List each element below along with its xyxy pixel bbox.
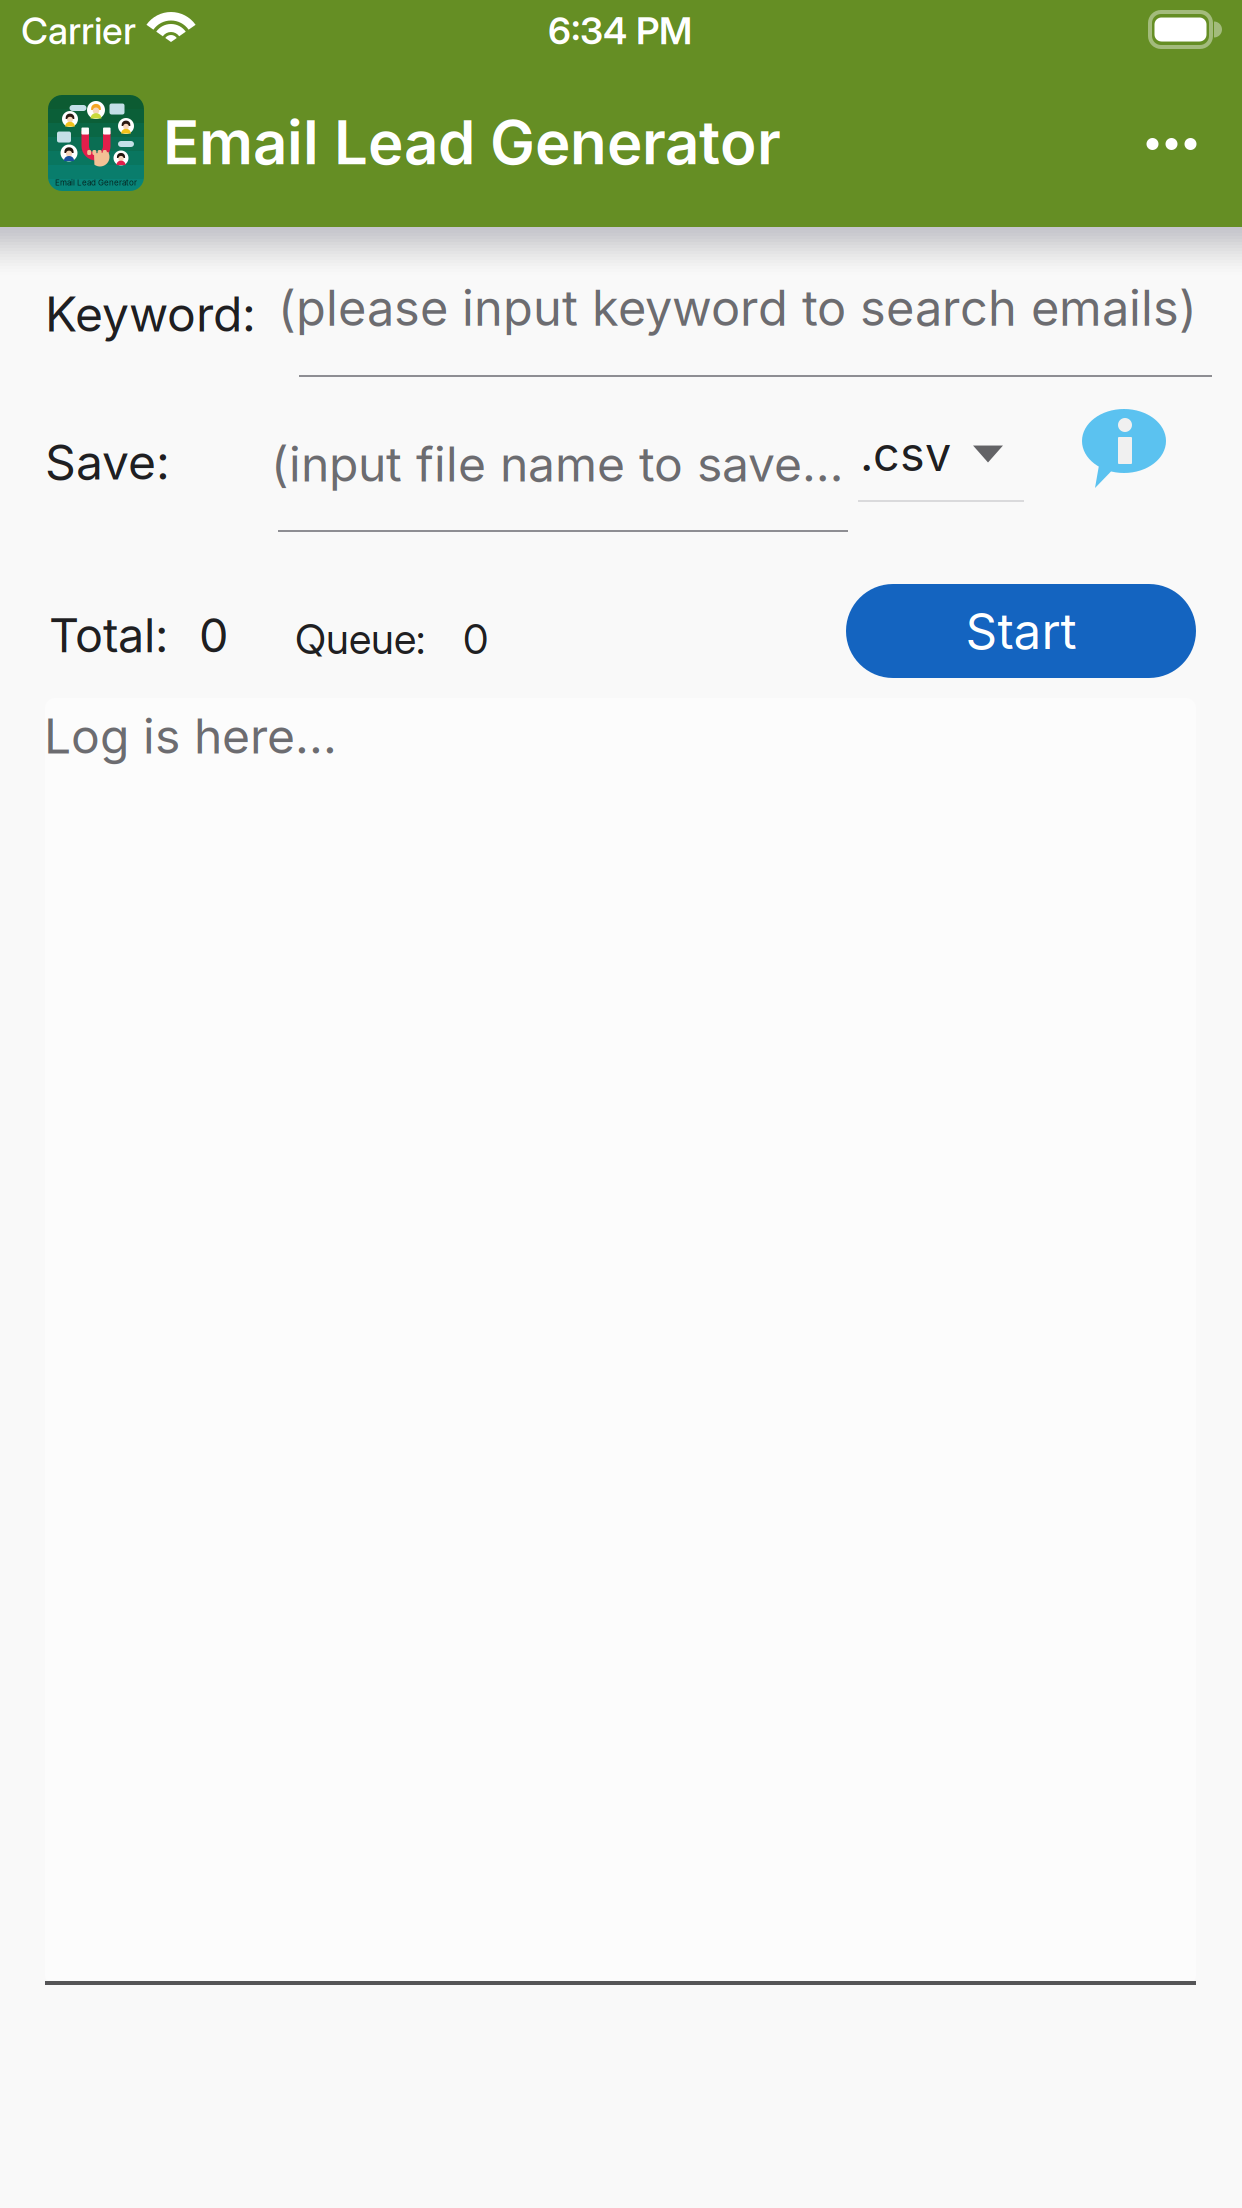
staticText: Keyword: [45,285,256,343]
staticText: Queue: [295,614,425,664]
staticText: Total: [49,607,168,663]
staticText: Email Lead Generator [163,106,781,179]
button[interactable]: (input file name to save… [275,433,845,532]
button[interactable]: Information about the save file name [1082,408,1166,490]
button[interactable]: More options [1124,100,1219,188]
staticText: .csv [860,426,951,482]
staticText: Start [965,601,1076,661]
button[interactable]: .csv [858,426,1024,502]
staticText: Email Lead Generator [55,178,137,187]
staticText: 6:34 PM [548,8,692,53]
staticText: (input file name to save… [271,435,843,493]
staticText: Carrier [21,8,136,53]
staticText: (please input keyword to search emails) [278,279,1197,337]
staticText: Save: [45,433,170,491]
staticText: Log is here... [44,707,337,765]
button[interactable]: (please input keyword to search emails) [283,277,1196,377]
staticText: 0 [463,614,488,664]
button[interactable]: Start [846,584,1196,678]
staticText: 0 [199,607,228,663]
